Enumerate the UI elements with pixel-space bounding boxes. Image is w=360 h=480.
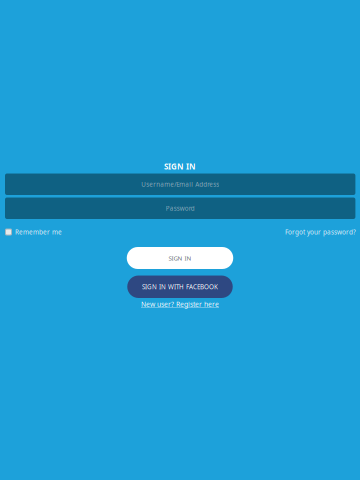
button[interactable]: Forgot your password? (285, 228, 356, 236)
button[interactable]: SIGN IN WITH FACEBOOK (127, 275, 233, 298)
staticText: SIGN IN (164, 161, 196, 172)
button[interactable]: SIGN IN (127, 247, 233, 269)
button[interactable]: Password (5, 197, 355, 219)
button[interactable]: Remember me (5, 228, 62, 236)
staticText: SIGN IN (168, 254, 191, 262)
staticText: Password (166, 204, 195, 212)
button[interactable]: New user? Register here (141, 299, 219, 309)
staticText: Forgot your password? (285, 228, 356, 236)
staticText: New user? Register here (141, 299, 219, 309)
staticText: SIGN IN WITH FACEBOOK (142, 282, 218, 291)
staticText: Remember me (15, 228, 62, 236)
staticText: Username/Email Address (141, 180, 219, 188)
button[interactable]: Username/Email Address (5, 173, 355, 195)
